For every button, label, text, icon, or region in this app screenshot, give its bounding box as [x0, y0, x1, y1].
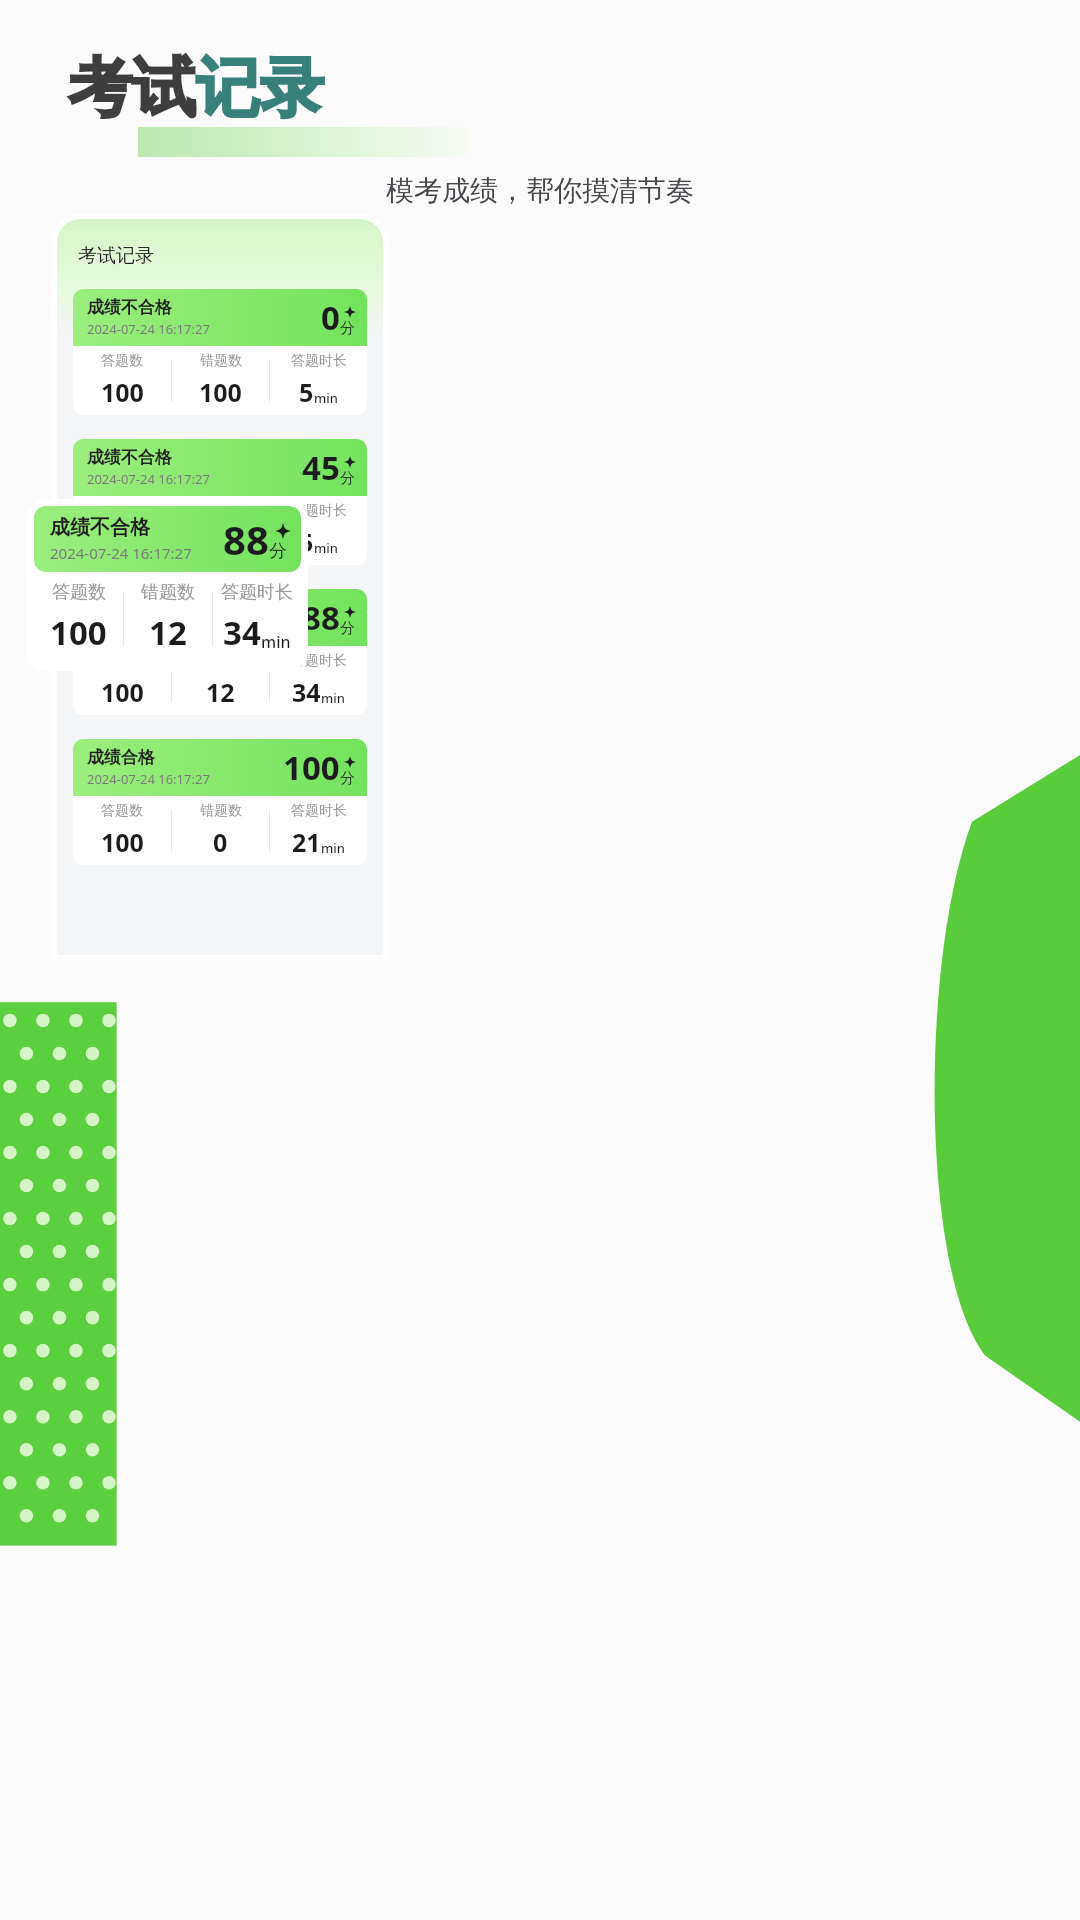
staticText: 100: [101, 825, 144, 859]
staticText: 34: [292, 675, 321, 709]
staticText: 答题时长: [291, 502, 347, 520]
staticText: 100: [283, 745, 340, 790]
staticText: 5: [299, 525, 314, 559]
staticText: 答题数: [101, 352, 143, 370]
button[interactable]: 成绩合格: [73, 739, 367, 865]
staticText: 成绩不合格: [87, 597, 172, 618]
staticText: 2024-07-24 16:17:27: [87, 470, 210, 488]
staticText: 100: [199, 375, 242, 409]
staticText: 12: [149, 610, 187, 655]
staticText: 答题数: [101, 802, 143, 820]
staticText: 100: [199, 525, 242, 559]
staticText: 34: [223, 610, 261, 655]
staticText: 2024-07-24 16:17:27: [87, 770, 210, 788]
staticText: 0: [213, 825, 228, 859]
staticText: 答题时长: [291, 352, 347, 370]
staticText: 12: [206, 675, 235, 709]
staticText: 考试: [68, 48, 196, 129]
staticText: 记录: [196, 48, 324, 129]
staticText: 答题数: [101, 502, 143, 520]
staticText: min: [321, 689, 345, 707]
staticText: 2024-07-24 16:17:27: [87, 320, 210, 338]
button[interactable]: 成绩不合格: [73, 439, 367, 565]
button[interactable]: 成绩不合格: [73, 589, 367, 715]
staticText: 成绩合格: [87, 747, 155, 768]
staticText: 分: [340, 319, 355, 338]
staticText: min: [314, 389, 338, 407]
staticText: 100: [50, 610, 107, 655]
staticText: 45: [302, 445, 340, 490]
staticText: 分: [340, 769, 355, 788]
staticText: 错题数: [200, 352, 242, 370]
staticText: 分: [269, 540, 287, 563]
staticText: 错题数: [200, 502, 242, 520]
staticText: 模考成绩，帮你摸清节奏: [0, 173, 1080, 208]
staticText: min: [261, 631, 291, 653]
staticText: 2024-07-24 16:17:27: [87, 620, 210, 638]
staticText: 答题时长: [291, 652, 347, 670]
staticText: 答题时长: [291, 802, 347, 820]
staticText: 答题时长: [221, 581, 293, 604]
button[interactable]: 成绩不合格: [73, 289, 367, 415]
staticText: 21: [292, 825, 321, 859]
staticText: 错题数: [141, 581, 195, 604]
staticText: 错题数: [200, 802, 242, 820]
staticText: 分: [340, 619, 355, 638]
staticText: 100: [101, 375, 144, 409]
staticText: 答题数: [52, 581, 106, 604]
staticText: 考试记录: [78, 244, 154, 268]
staticText: 100: [101, 525, 144, 559]
staticText: 成绩不合格: [50, 515, 150, 540]
staticText: 88: [302, 595, 340, 640]
staticText: 100: [101, 675, 144, 709]
staticText: 分: [340, 469, 355, 488]
staticText: 5: [299, 375, 314, 409]
staticText: 成绩不合格: [87, 447, 172, 468]
staticText: 成绩不合格: [87, 297, 172, 318]
staticText: 88: [223, 512, 269, 566]
staticText: 2024-07-24 16:17:27: [50, 543, 192, 563]
staticText: min: [321, 839, 345, 857]
staticText: min: [314, 539, 338, 557]
staticText: 0: [321, 295, 340, 340]
button[interactable]: 成绩不合格: [34, 506, 301, 664]
